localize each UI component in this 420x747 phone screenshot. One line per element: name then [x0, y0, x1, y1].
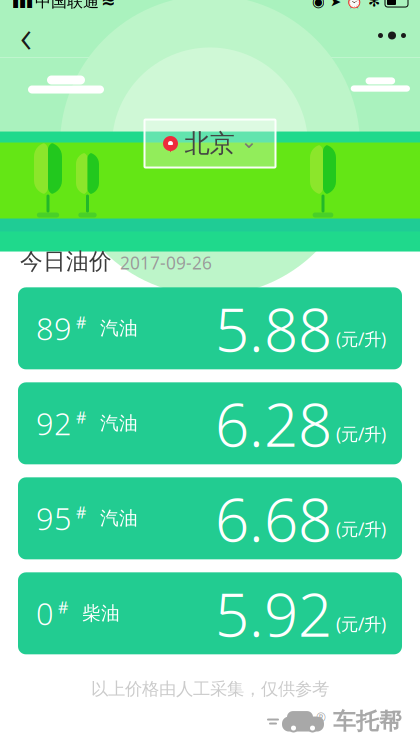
button[interactable]: 95	[18, 477, 402, 559]
staticText: ➤	[330, 0, 341, 9]
staticText: 最新油价	[160, 20, 260, 51]
staticText: 89	[36, 308, 72, 349]
staticText: 0	[36, 593, 54, 634]
staticText: #	[76, 502, 86, 523]
staticText: ®	[316, 710, 326, 725]
staticText: ✻	[368, 0, 380, 10]
staticText: 以上价格由人工采集，仅供参考	[91, 678, 329, 700]
staticText: 95	[36, 498, 72, 539]
staticText: ◉	[312, 0, 325, 10]
staticText: 5.88	[215, 288, 332, 368]
staticText: (元/升)	[336, 612, 386, 635]
staticText: 汽油	[100, 317, 138, 340]
staticText: (元/升)	[336, 422, 386, 445]
staticText: 柴油	[82, 602, 120, 625]
staticText: ⌄	[240, 130, 257, 152]
staticText: 中国联通	[35, 0, 99, 11]
staticText: ▾	[167, 139, 174, 156]
button[interactable]: 0	[18, 572, 402, 654]
staticText: 92	[36, 403, 72, 444]
button[interactable]: ▾	[144, 119, 275, 167]
button[interactable]: 89	[18, 287, 402, 369]
staticText: #	[76, 407, 86, 428]
staticText: 汽油	[100, 507, 138, 530]
staticText: 6.28	[215, 383, 332, 463]
button[interactable]: Back	[0, 13, 52, 57]
button[interactable]: 92	[18, 382, 402, 464]
staticText: ≈	[101, 0, 116, 11]
staticText: 车托帮	[333, 708, 402, 735]
staticText: #	[58, 597, 68, 618]
staticText: 5.92	[215, 573, 332, 653]
staticText: (元/升)	[336, 517, 386, 540]
staticText: 6.68	[215, 478, 332, 558]
staticText: ‹	[20, 5, 32, 66]
button[interactable]: More	[364, 13, 420, 57]
staticText: ▮▮▮	[12, 0, 33, 9]
staticText: 汽油	[100, 412, 138, 435]
staticText: (元/升)	[336, 327, 386, 350]
staticText: #	[76, 312, 86, 333]
staticText: ⏰	[346, 0, 363, 9]
staticText: 北京	[184, 128, 234, 159]
staticText: 2017-09-26	[120, 251, 212, 274]
staticText: 今日油价	[20, 247, 112, 275]
